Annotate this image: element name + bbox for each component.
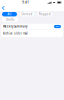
button[interactable]: Drafts: [2, 17, 18, 22]
staticText: Open: [55, 26, 59, 27]
staticText: 9:41: [22, 1, 29, 4]
staticText: All: [7, 12, 11, 16]
staticText: Flagged: [39, 12, 51, 16]
staticText: Unread: [22, 12, 33, 16]
button[interactable]: Archive older mail: [1, 30, 63, 37]
button[interactable]: All: [2, 12, 17, 16]
staticText: Drafts: [6, 18, 14, 21]
staticText: Archive older mail: [3, 32, 28, 35]
button[interactable]: Unread: [20, 12, 35, 16]
button[interactable]: Flagged: [37, 12, 52, 16]
button[interactable]: Weekly Summary: [1, 24, 63, 29]
staticText: Weekly Summary: [3, 25, 27, 28]
button[interactable]: Back: [0, 5, 8, 11]
